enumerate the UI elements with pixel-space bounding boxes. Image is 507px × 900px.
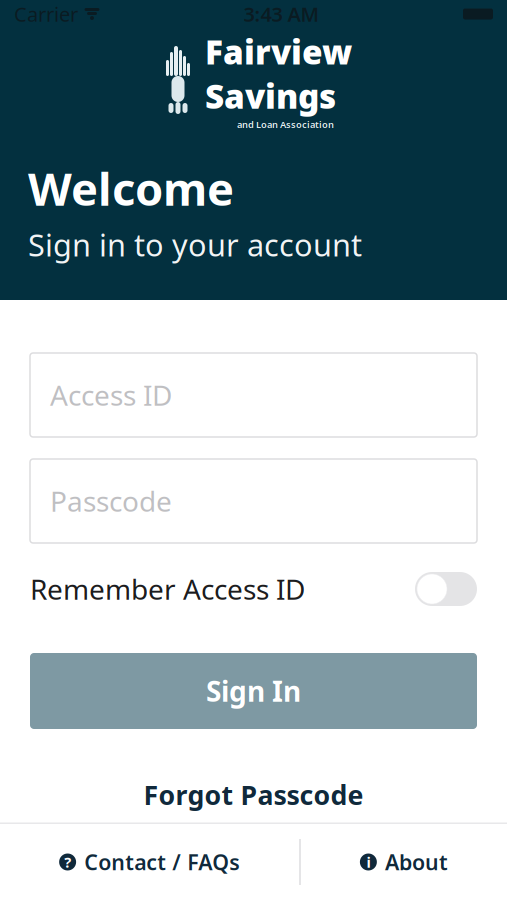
button[interactable]: ? <box>59 840 240 884</box>
button[interactable]: Remember Access ID <box>415 572 477 606</box>
staticText: Welcome <box>28 158 234 218</box>
staticText: Access ID <box>50 376 172 414</box>
staticText: Carrier <box>14 1 78 27</box>
button[interactable]: i <box>360 840 448 884</box>
staticText: Fairview <box>205 29 352 74</box>
staticText: Passcode <box>50 482 172 520</box>
staticText: Contact / FAQs <box>84 848 240 876</box>
button[interactable]: Access ID <box>30 353 477 437</box>
staticText: Sign In <box>206 672 301 710</box>
staticText: i <box>366 852 370 872</box>
staticText: Savings <box>205 74 336 118</box>
staticText: and Loan Association <box>237 118 334 130</box>
button[interactable]: Sign In <box>30 653 477 729</box>
button[interactable]: Forgot Passcode <box>30 767 477 822</box>
button[interactable]: Passcode <box>30 459 477 543</box>
staticText: 3:43 AM <box>243 1 319 27</box>
staticText: Remember Access ID <box>30 570 305 608</box>
staticText: Sign in to your account <box>28 224 362 265</box>
staticText: Forgot Passcode <box>143 777 363 812</box>
staticText: About <box>385 848 448 876</box>
staticText: ? <box>64 852 71 872</box>
